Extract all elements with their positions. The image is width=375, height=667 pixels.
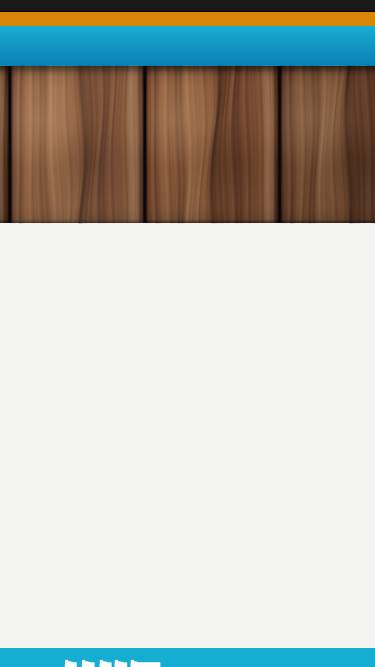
button[interactable]: App bar <box>0 26 375 66</box>
button[interactable]: Footer navigation <box>0 648 375 667</box>
